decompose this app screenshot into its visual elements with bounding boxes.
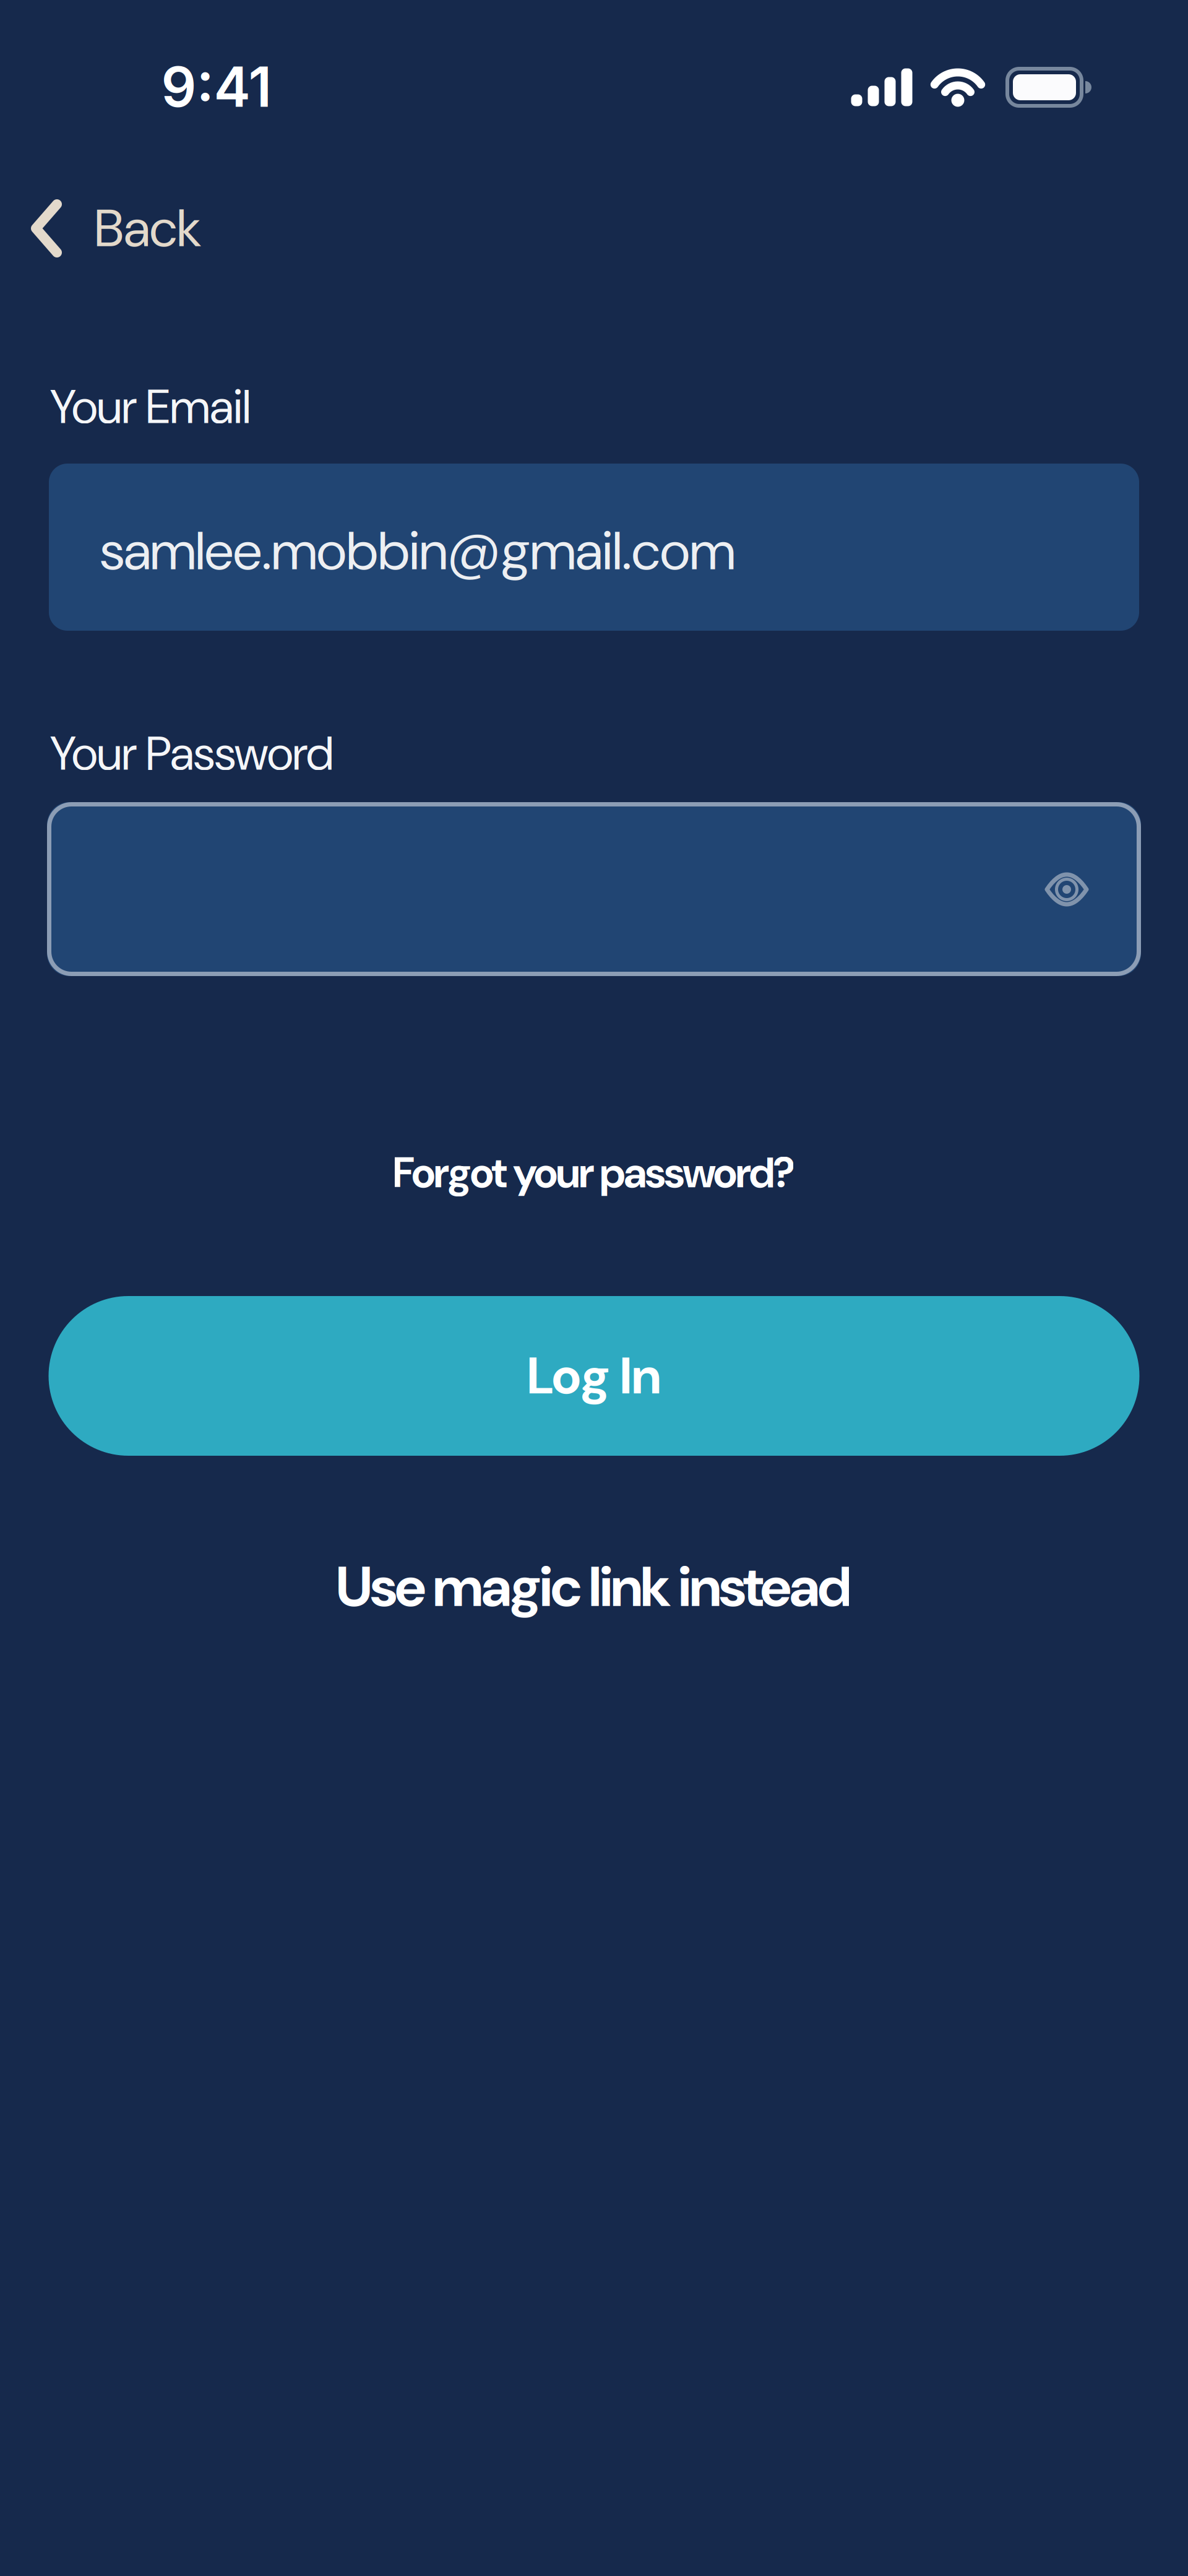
staticText: Back xyxy=(95,195,201,262)
button[interactable]: Back xyxy=(31,191,291,266)
button[interactable]: Forgot your password? xyxy=(393,1145,795,1200)
staticText: samlee.mobbin@gmail.com xyxy=(100,516,735,586)
staticText: Forgot your password? xyxy=(393,1145,795,1200)
staticText: Log In xyxy=(527,1342,661,1409)
staticText: 9:41 xyxy=(161,53,272,120)
button[interactable] xyxy=(47,802,1141,976)
button[interactable] xyxy=(1032,859,1101,920)
staticText: Your Password xyxy=(50,723,334,784)
button[interactable]: samlee.mobbin@gmail.com xyxy=(49,464,1139,631)
staticText: Your Email xyxy=(50,376,251,438)
button[interactable]: Use magic link instead xyxy=(336,1551,852,1623)
staticText: Use magic link instead xyxy=(336,1551,852,1623)
button[interactable]: Log In xyxy=(49,1296,1139,1456)
